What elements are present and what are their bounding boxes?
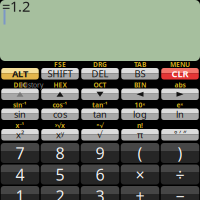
button[interactable]: 5: [40, 164, 80, 185]
staticText: DEL: [91, 68, 108, 80]
button[interactable]: tan: [80, 107, 120, 121]
staticText: sin: [14, 108, 26, 120]
button[interactable]: Arrow: [80, 87, 120, 101]
staticText: CLR: [171, 68, 188, 80]
staticText: 9: [95, 142, 104, 164]
button[interactable]: ° ′ ″: [160, 128, 200, 141]
staticText: √: [97, 129, 103, 140]
staticText: MENU: [170, 60, 190, 69]
button[interactable]: ×: [120, 164, 160, 185]
staticText: DEC: [13, 81, 26, 89]
staticText: =1.2: [2, 0, 30, 16]
staticText: 7: [15, 142, 24, 164]
button[interactable]: π: [120, 128, 160, 141]
staticText: ⁿ√: [96, 121, 103, 130]
staticText: 4: [15, 164, 24, 185]
button[interactable]: 3: [80, 185, 120, 200]
staticText: SHIFT: [47, 68, 72, 80]
button[interactable]: 4: [0, 164, 40, 185]
staticText: eˣ: [176, 101, 183, 109]
staticText: BIN: [134, 81, 146, 89]
button[interactable]: (: [120, 142, 160, 163]
staticText: 5: [55, 164, 64, 185]
staticText: HEX: [53, 81, 66, 89]
staticText: −: [175, 185, 184, 200]
button[interactable]: x²: [0, 128, 40, 141]
button[interactable]: 2: [40, 185, 80, 200]
staticText: +: [135, 185, 144, 200]
staticText: 2: [55, 185, 64, 200]
staticText: 10ˣ: [134, 101, 145, 109]
staticText: ln: [176, 108, 184, 120]
staticText: 8: [55, 142, 64, 164]
button[interactable]: ln: [160, 107, 200, 121]
button[interactable]: −: [160, 185, 200, 200]
button[interactable]: ALT: [0, 67, 40, 80]
staticText: ° ′ ″: [174, 129, 186, 140]
button[interactable]: Arrow: [40, 87, 80, 101]
button[interactable]: log: [120, 107, 160, 121]
button[interactable]: 9: [80, 142, 120, 163]
staticText: History: [21, 81, 43, 89]
staticText: ALT: [12, 68, 28, 80]
staticText: log: [133, 108, 147, 120]
staticText: π: [137, 129, 143, 141]
button[interactable]: Arrow: [0, 87, 40, 101]
staticText: xʸ: [56, 129, 64, 141]
button[interactable]: DEL: [80, 67, 120, 80]
button[interactable]: cos: [40, 107, 80, 121]
button[interactable]: Arrow: [120, 87, 160, 101]
staticText: cos: [53, 108, 67, 120]
button[interactable]: ): [160, 142, 200, 163]
staticText: x⁻¹: [15, 121, 24, 130]
button[interactable]: 8: [40, 142, 80, 163]
button[interactable]: √: [80, 128, 120, 141]
staticText: BS: [134, 68, 145, 80]
button[interactable]: ÷: [160, 164, 200, 185]
staticText: tan: [93, 108, 107, 120]
staticText: 6: [95, 164, 104, 185]
staticText: ʸ√x: [55, 121, 65, 130]
staticText: 1: [15, 185, 24, 200]
staticText: 3: [95, 185, 104, 200]
button[interactable]: Arrow: [160, 87, 200, 101]
staticText: ÷: [175, 164, 184, 185]
staticText: n!: [137, 121, 143, 130]
staticText: abs: [174, 81, 185, 89]
staticText: cos⁻¹: [52, 101, 67, 109]
staticText: sin⁻¹: [13, 101, 27, 109]
staticText: FSE: [54, 60, 66, 69]
button[interactable]: 1: [0, 185, 40, 200]
staticText: tan⁻¹: [92, 101, 108, 109]
button[interactable]: CLR: [160, 67, 200, 80]
staticText: TAB: [134, 60, 146, 69]
button[interactable]: 6: [80, 164, 120, 185]
staticText: OCT: [93, 81, 106, 89]
button[interactable]: xʸ: [40, 128, 80, 141]
button[interactable]: BS: [120, 67, 160, 80]
staticText: DRG: [93, 60, 107, 69]
button[interactable]: sin: [0, 107, 40, 121]
staticText: ×: [135, 164, 144, 185]
staticText: ): [177, 142, 182, 164]
button[interactable]: 7: [0, 142, 40, 163]
button[interactable]: +: [120, 185, 160, 200]
button[interactable]: SHIFT: [40, 67, 80, 80]
staticText: x²: [16, 129, 24, 141]
staticText: (: [137, 142, 142, 164]
